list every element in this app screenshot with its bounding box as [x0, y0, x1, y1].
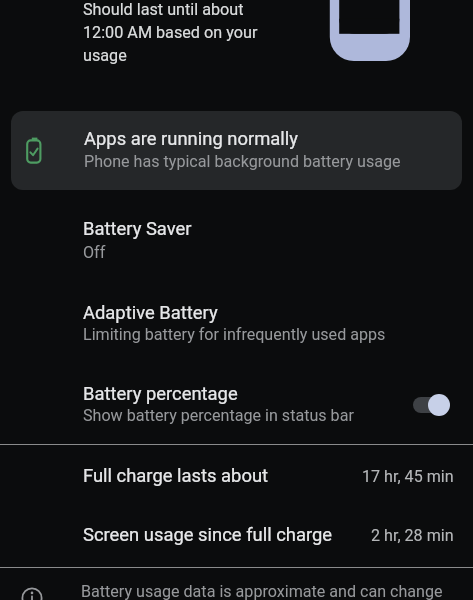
staticText: Battery Saver — [83, 218, 192, 240]
staticText: Apps are running normally — [84, 128, 298, 150]
staticText: Show battery percentage in status bar — [83, 406, 354, 425]
button[interactable]: Apps are running normally — [11, 111, 462, 190]
staticText: 17 hr, 45 min — [362, 467, 454, 486]
button[interactable]: Full charge lasts about — [0, 444, 473, 496]
staticText: Limiting battery for infrequently used a… — [83, 325, 386, 344]
staticText: Off — [83, 243, 106, 262]
staticText: 2 hr, 28 min — [371, 526, 454, 545]
staticText: Adaptive Battery — [83, 302, 218, 324]
staticText: Screen usage since full charge — [83, 524, 333, 546]
staticText: Phone has typical background battery usa… — [84, 152, 401, 171]
staticText: Full charge lasts about — [83, 465, 269, 487]
staticText: Should last until about 12:00 AM based o… — [83, 0, 258, 65]
button[interactable]: Battery percentage — [0, 368, 473, 444]
button[interactable]: Battery Saver — [0, 206, 473, 284]
staticText: Battery percentage — [83, 383, 238, 405]
button[interactable]: Adaptive Battery — [0, 284, 473, 368]
staticText: Battery usage data is approximate and ca… — [81, 582, 443, 600]
button[interactable]: Screen usage since full charge — [0, 496, 473, 548]
